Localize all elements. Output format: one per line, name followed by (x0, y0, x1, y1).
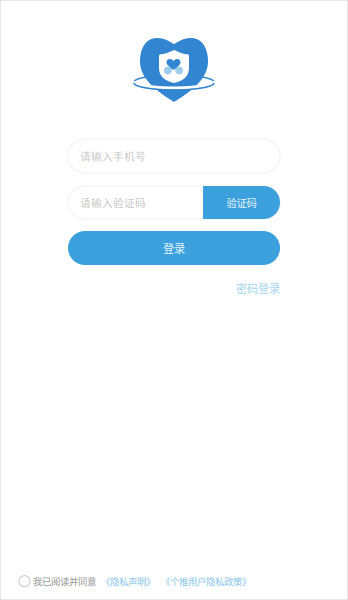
staticText: 请输入手机号 (80, 148, 146, 164)
staticText: 登录 (163, 240, 185, 256)
button[interactable]: 登录 (68, 231, 280, 265)
staticText: 《隐私声明》 (101, 574, 155, 588)
button[interactable]: 密码登录 (236, 280, 280, 296)
button[interactable]: 《个推用户隐私政策》 (155, 574, 251, 588)
button[interactable]: 《隐私声明》 (96, 574, 155, 588)
staticText: 请输入验证码 (80, 195, 146, 210)
staticText: 《个推用户隐私政策》 (161, 574, 251, 588)
staticText: 密码登录 (236, 280, 280, 296)
staticText: 我已阅读并同意 (33, 574, 96, 588)
button[interactable]: Agree to privacy terms (19, 576, 33, 587)
button[interactable]: 验证码 (203, 186, 280, 219)
staticText: 验证码 (226, 195, 256, 210)
